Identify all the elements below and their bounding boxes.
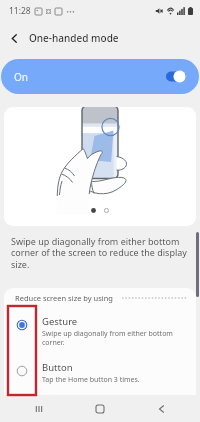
button[interactable]: On bbox=[1, 59, 199, 94]
staticText: Swipe up diagonally from either bottom c… bbox=[11, 235, 188, 271]
button[interactable]: Home bbox=[78, 395, 122, 422]
staticText: Swipe up diagonally from either bottom c… bbox=[42, 329, 173, 347]
button[interactable]: Button bbox=[4, 361, 196, 385]
staticText: On bbox=[14, 70, 28, 84]
staticText: Button bbox=[42, 361, 73, 374]
staticText: Gesture bbox=[42, 315, 78, 328]
button[interactable]: Back bbox=[0, 22, 29, 54]
staticText: One-handed mode bbox=[29, 31, 119, 45]
staticText: Tap the Home button 3 times. bbox=[42, 375, 140, 385]
button[interactable]: Recent apps bbox=[17, 395, 61, 422]
button[interactable]: Gesture bbox=[4, 315, 196, 347]
button[interactable]: Back bbox=[139, 395, 183, 422]
staticText: Reduce screen size by using bbox=[15, 293, 113, 303]
staticText: 11:28 bbox=[9, 5, 31, 17]
